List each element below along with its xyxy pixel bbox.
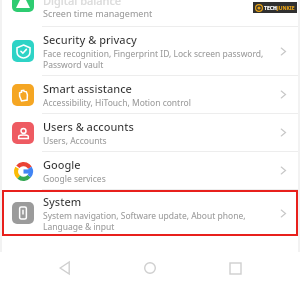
staticText: Google <box>43 157 81 172</box>
staticText: Google services <box>43 173 106 185</box>
staticText: Security & privacy <box>43 32 137 47</box>
button[interactable]: Home <box>130 252 170 284</box>
button[interactable]: Security & privacy <box>2 27 298 75</box>
staticText: Screen time management <box>43 7 153 19</box>
staticText: Users & accounts <box>43 119 134 134</box>
staticText: System <box>43 194 82 209</box>
button[interactable]: Users & accounts <box>2 114 298 151</box>
staticText: Accessibility, HiTouch, Motion control <box>43 97 191 109</box>
staticText: Users, Accounts <box>43 135 107 147</box>
button[interactable]: System <box>2 190 298 236</box>
button[interactable]: Smart assistance <box>2 76 298 113</box>
staticText: Smart assistance <box>43 81 132 96</box>
button[interactable]: Back <box>45 252 85 284</box>
staticText: Face recognition, Fingerprint ID, Lock s… <box>43 48 264 70</box>
button[interactable]: Digital balance <box>2 0 298 26</box>
staticText: System navigation, Software update, Abou… <box>43 210 246 232</box>
button[interactable]: Recents <box>215 252 255 284</box>
staticText: JUNKIE <box>277 5 295 12</box>
staticText: TECH <box>264 5 277 12</box>
staticText: Digital balance <box>43 0 122 8</box>
button[interactable]: Google <box>2 152 298 189</box>
